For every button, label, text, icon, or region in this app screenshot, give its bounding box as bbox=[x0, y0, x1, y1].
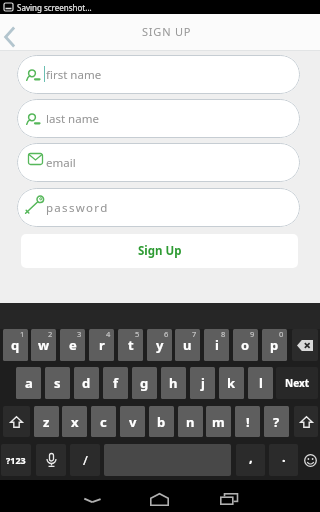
staticText: e bbox=[69, 336, 77, 354]
button[interactable]: r bbox=[89, 329, 114, 361]
staticText: x bbox=[71, 413, 79, 431]
staticText: c bbox=[100, 413, 107, 431]
staticText: t bbox=[128, 336, 134, 354]
button[interactable] bbox=[212, 488, 246, 506]
button[interactable]: ! bbox=[235, 406, 260, 437]
staticText: h bbox=[169, 374, 178, 392]
staticText: last name bbox=[46, 111, 99, 127]
button[interactable]: password bbox=[17, 188, 300, 227]
button[interactable] bbox=[292, 329, 318, 361]
button[interactable] bbox=[302, 444, 318, 476]
staticText: y bbox=[156, 336, 164, 354]
button[interactable] bbox=[76, 490, 108, 506]
button[interactable]: k bbox=[219, 367, 244, 399]
button[interactable]: . bbox=[269, 444, 298, 476]
button[interactable]: n bbox=[178, 406, 203, 437]
button[interactable]: first name bbox=[17, 55, 300, 94]
button[interactable]: w bbox=[31, 329, 56, 361]
button[interactable]: f bbox=[103, 367, 128, 399]
staticText: password bbox=[46, 200, 109, 216]
button[interactable]: ?123 bbox=[1, 444, 31, 476]
button[interactable]: last name bbox=[17, 99, 300, 138]
staticText: p bbox=[270, 336, 279, 354]
staticText: Next bbox=[285, 376, 310, 390]
staticText: o bbox=[241, 336, 250, 354]
staticText: / bbox=[83, 451, 88, 469]
staticText: ? bbox=[273, 413, 280, 431]
button[interactable]: v bbox=[120, 406, 145, 437]
button[interactable]: o bbox=[233, 329, 258, 361]
staticText: v bbox=[129, 413, 137, 431]
staticText: a bbox=[25, 374, 33, 392]
button[interactable]: c bbox=[91, 406, 116, 437]
button[interactable]: y bbox=[147, 329, 172, 361]
staticText: ?123 bbox=[6, 454, 26, 466]
staticText: q bbox=[11, 336, 20, 354]
staticText: z bbox=[43, 413, 50, 431]
staticText: . bbox=[282, 448, 286, 466]
staticText: f bbox=[113, 374, 119, 392]
staticText: i bbox=[215, 336, 219, 354]
button[interactable] bbox=[294, 406, 318, 437]
button[interactable]: Sign Up bbox=[21, 234, 298, 268]
staticText: Saving screenshot... bbox=[17, 2, 92, 13]
staticText: 1 bbox=[20, 329, 25, 339]
button[interactable]: q bbox=[3, 329, 28, 361]
button[interactable]: d bbox=[74, 367, 99, 399]
staticText: 6 bbox=[164, 329, 169, 339]
staticText: 8 bbox=[221, 329, 226, 339]
staticText: d bbox=[82, 374, 91, 392]
button[interactable] bbox=[36, 444, 66, 476]
button[interactable]: m bbox=[206, 406, 231, 437]
button[interactable]: t bbox=[118, 329, 143, 361]
staticText: m bbox=[212, 413, 225, 431]
staticText: first name bbox=[46, 67, 102, 83]
button[interactable]: h bbox=[161, 367, 186, 399]
staticText: w bbox=[38, 336, 50, 354]
staticText: 2 bbox=[48, 329, 53, 339]
staticText: email bbox=[46, 155, 76, 171]
staticText: g bbox=[140, 374, 149, 392]
staticText: u bbox=[183, 336, 192, 354]
button[interactable]: / bbox=[70, 444, 100, 476]
button[interactable]: a bbox=[16, 367, 41, 399]
button[interactable] bbox=[144, 488, 176, 506]
staticText: r bbox=[99, 336, 105, 354]
button[interactable]: i bbox=[204, 329, 229, 361]
staticText: ! bbox=[246, 413, 250, 431]
staticText: SIGN UP bbox=[142, 24, 192, 39]
staticText: 7 bbox=[192, 329, 197, 339]
staticText: Sign Up bbox=[138, 243, 182, 259]
button[interactable]: ? bbox=[264, 406, 289, 437]
button[interactable] bbox=[3, 406, 30, 437]
staticText: , bbox=[249, 448, 253, 466]
button[interactable]: b bbox=[149, 406, 174, 437]
button[interactable]: s bbox=[45, 367, 70, 399]
staticText: k bbox=[227, 374, 236, 392]
button[interactable]: j bbox=[190, 367, 215, 399]
staticText: 5 bbox=[135, 329, 140, 339]
button[interactable]: x bbox=[62, 406, 87, 437]
button[interactable]: email bbox=[17, 143, 300, 182]
staticText: 3 bbox=[77, 329, 82, 339]
button[interactable]: u bbox=[175, 329, 200, 361]
button[interactable]: z bbox=[34, 406, 59, 437]
button[interactable]: l bbox=[248, 367, 273, 399]
staticText: 4 bbox=[106, 329, 111, 339]
button[interactable]: , bbox=[236, 444, 265, 476]
staticText: b bbox=[157, 413, 166, 431]
staticText: 0 bbox=[279, 329, 284, 339]
staticText: l bbox=[259, 374, 263, 392]
button[interactable]: e bbox=[60, 329, 85, 361]
staticText: j bbox=[201, 374, 205, 392]
staticText: s bbox=[54, 374, 61, 392]
button[interactable] bbox=[0, 18, 26, 46]
button[interactable]: g bbox=[132, 367, 157, 399]
button[interactable]: Next bbox=[276, 367, 318, 399]
staticText: 9 bbox=[250, 329, 255, 339]
staticText: n bbox=[186, 413, 195, 431]
button[interactable]: p bbox=[262, 329, 287, 361]
